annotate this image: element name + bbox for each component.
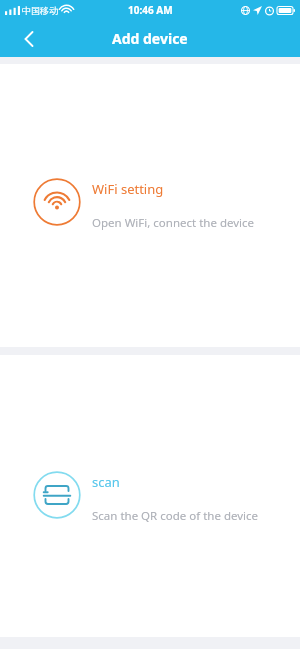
staticText: WiFi setting (92, 180, 164, 198)
staticText: Add device (112, 29, 188, 48)
button[interactable]: WiFi setting (0, 64, 300, 347)
staticText: 10:46 AM (128, 3, 173, 17)
staticText: Scan the QR code of the device (92, 508, 259, 524)
staticText: Open WiFi, connect the device (92, 215, 255, 231)
button[interactable]: Back (14, 25, 42, 53)
button[interactable]: scan (0, 355, 300, 637)
staticText: 中国移动 (22, 5, 58, 16)
staticText: scan (92, 473, 120, 491)
